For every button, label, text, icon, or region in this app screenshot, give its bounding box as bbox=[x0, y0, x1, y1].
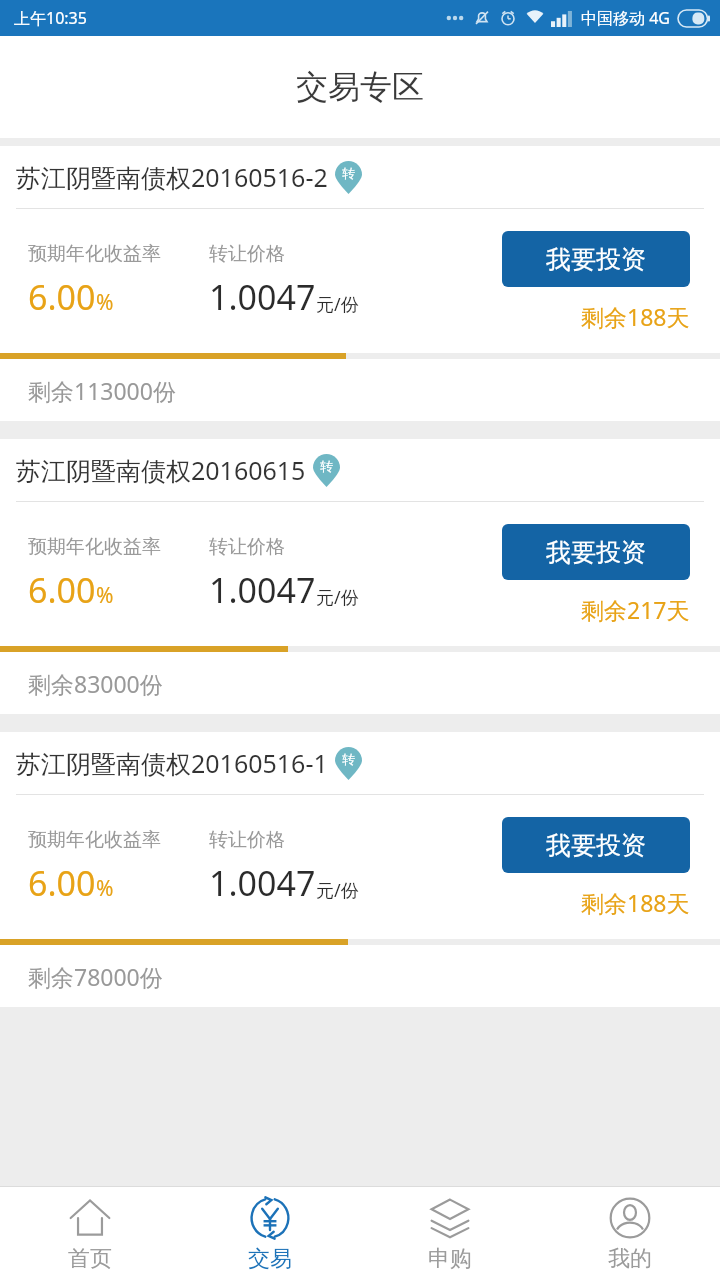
staticText: 我要投资 bbox=[546, 244, 646, 275]
button[interactable]: 我的 bbox=[540, 1187, 720, 1280]
button[interactable]: 首页 bbox=[0, 1187, 180, 1280]
button[interactable]: 交易 bbox=[180, 1187, 360, 1280]
staticText: 剩余78000份 bbox=[28, 961, 163, 992]
staticText: 交易专区 bbox=[296, 67, 424, 107]
staticText: 苏江阴暨南债权20160615 bbox=[16, 453, 306, 487]
staticText: 6.00 bbox=[28, 567, 96, 613]
staticText: 我要投资 bbox=[546, 537, 646, 568]
staticText: % bbox=[96, 581, 114, 610]
staticText: 转 bbox=[320, 458, 333, 474]
button[interactable]: 我要投资 bbox=[502, 524, 690, 580]
staticText: 预期年化收益率 bbox=[28, 535, 161, 559]
staticText: 上午10:35 bbox=[14, 7, 87, 29]
staticText: 预期年化收益率 bbox=[28, 828, 161, 852]
staticText: 元/份 bbox=[316, 292, 359, 317]
staticText: 元/份 bbox=[316, 878, 359, 903]
staticText: 预期年化收益率 bbox=[28, 242, 161, 266]
staticText: 剩余217天 bbox=[581, 594, 690, 625]
staticText: % bbox=[96, 874, 114, 903]
button[interactable]: 我要投资 bbox=[502, 817, 690, 873]
staticText: 我要投资 bbox=[546, 830, 646, 861]
staticText: 苏江阴暨南债权20160516-1 bbox=[16, 746, 328, 780]
staticText: 1.0047 bbox=[209, 860, 316, 906]
staticText: 申购 bbox=[428, 1245, 472, 1273]
staticText: 交易 bbox=[248, 1245, 292, 1273]
staticText: 中国移动 4G bbox=[581, 7, 670, 29]
staticText: 首页 bbox=[68, 1245, 112, 1273]
staticText: % bbox=[96, 288, 114, 317]
staticText: 转让价格 bbox=[209, 828, 285, 852]
staticText: 1.0047 bbox=[209, 274, 316, 320]
staticText: 剩余113000份 bbox=[28, 375, 176, 406]
button[interactable]: 申购 bbox=[360, 1187, 540, 1280]
staticText: 转让价格 bbox=[209, 535, 285, 559]
staticText: 转 bbox=[342, 165, 355, 181]
staticText: 转让价格 bbox=[209, 242, 285, 266]
staticText: 1.0047 bbox=[209, 567, 316, 613]
button[interactable]: 我要投资 bbox=[502, 231, 690, 287]
staticText: 剩余188天 bbox=[581, 887, 690, 918]
staticText: 剩余188天 bbox=[581, 301, 690, 332]
staticText: 苏江阴暨南债权20160516-2 bbox=[16, 160, 328, 194]
staticText: 我的 bbox=[608, 1245, 652, 1273]
staticText: 6.00 bbox=[28, 274, 96, 320]
staticText: 剩余83000份 bbox=[28, 668, 163, 699]
staticText: 6.00 bbox=[28, 860, 96, 906]
staticText: 转 bbox=[342, 751, 355, 767]
staticText: 元/份 bbox=[316, 585, 359, 610]
